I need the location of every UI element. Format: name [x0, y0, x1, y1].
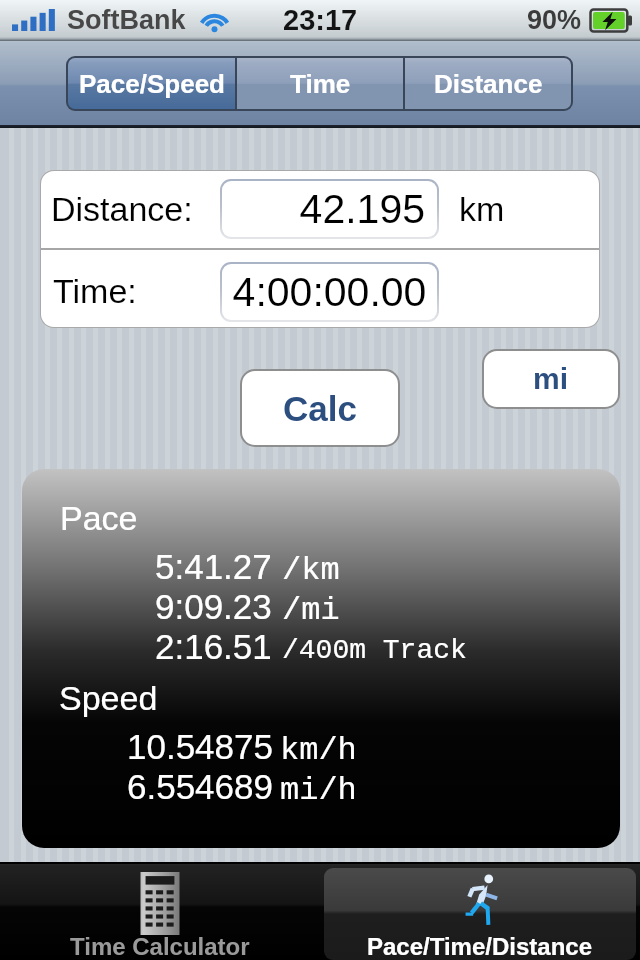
staticText: km [459, 190, 505, 228]
staticText: 9:09.23 [155, 587, 272, 626]
staticText: 42.195 [233, 186, 425, 232]
staticText: Pace/Speed [79, 69, 225, 98]
staticText: Time: [53, 272, 137, 310]
button[interactable]: Pace/Speed [68, 58, 235, 109]
staticText: SoftBank [67, 5, 186, 35]
button[interactable]: 42.195 [222, 181, 437, 237]
staticText: mi [533, 362, 569, 396]
button[interactable]: Pace/Time/Distance [324, 868, 636, 960]
staticText: 90% [527, 5, 582, 35]
button[interactable]: Calc [242, 371, 398, 445]
button[interactable]: Time Calculator [4, 868, 316, 960]
staticText: mi/h [280, 772, 357, 808]
staticText: /400m Track [282, 635, 467, 667]
button[interactable]: mi [484, 351, 618, 407]
staticText: Speed [59, 679, 158, 717]
staticText: /mi [282, 592, 340, 628]
staticText: 2:16.51 [155, 627, 272, 666]
button[interactable]: 4:00:00.00 [222, 264, 437, 320]
button[interactable]: Distance [405, 58, 571, 109]
staticText: Calc [283, 389, 357, 428]
staticText: 6.554689 [127, 767, 273, 806]
staticText: 5:41.27 [155, 547, 272, 586]
button[interactable]: Time [237, 58, 403, 109]
staticText: Time [290, 69, 351, 98]
staticText: Time Calculator [70, 933, 250, 960]
staticText: Pace/Time/Distance [367, 933, 593, 960]
staticText: Distance: [51, 190, 193, 228]
staticText: Distance [434, 69, 543, 98]
staticText: 10.54875 [127, 727, 273, 766]
staticText: km/h [280, 732, 357, 768]
staticText: 23:17 [283, 4, 358, 36]
staticText: Pace [60, 499, 138, 537]
staticText: 4:00:00.00 [228, 269, 431, 315]
staticText: /km [282, 552, 340, 588]
